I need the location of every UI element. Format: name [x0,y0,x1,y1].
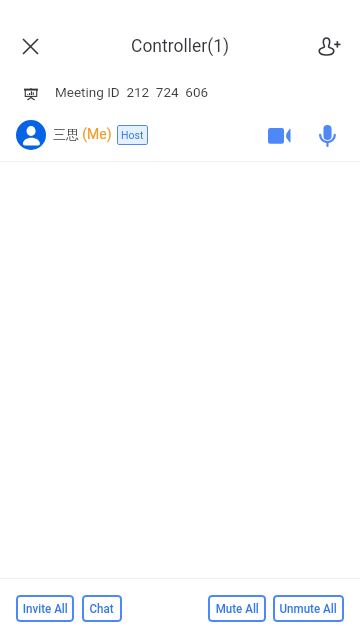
button[interactable]: Chat [82,595,122,622]
staticText: Unmute All [280,601,337,616]
button[interactable]: Add participant [308,24,352,68]
button[interactable]: Mute All [208,595,266,622]
staticText: Controller(1) [131,36,230,57]
staticText: 三思 (Me) [53,126,112,143]
staticText: Meeting ID 212 724 606 [55,84,209,100]
staticText: Host [121,129,144,141]
button[interactable]: Close [8,24,53,69]
staticText: Invite All [23,601,68,616]
button[interactable]: Unmute All [273,595,344,622]
button[interactable]: Invite All [16,595,74,622]
staticText: Chat [89,601,114,616]
button[interactable]: Microphone on [305,114,349,158]
button[interactable]: Video on [256,114,302,158]
button[interactable]: 三思 (Me) [0,111,360,161]
staticText: Mute All [216,601,259,616]
